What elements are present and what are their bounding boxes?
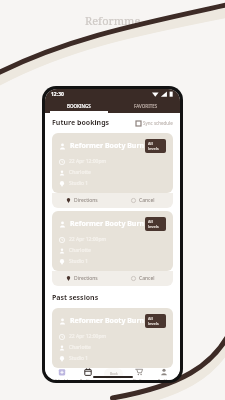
button[interactable]: Directions <box>52 197 112 204</box>
button[interactable]: Studio <box>126 368 151 380</box>
button[interactable]: Directions <box>52 275 112 282</box>
staticText: Reformme <box>85 13 141 28</box>
staticText: Future bookings <box>52 118 110 128</box>
staticText: Schedule <box>55 378 70 380</box>
staticText: Sync schedule <box>143 120 173 126</box>
staticText: Reformer Booty Burn <box>70 219 145 229</box>
button[interactable]: Cancel <box>112 275 173 282</box>
button[interactable]: Book a class <box>104 368 123 380</box>
staticText: FAVORITES <box>134 103 158 109</box>
staticText: Directions <box>74 275 98 282</box>
staticText: Charlotte <box>69 247 91 254</box>
button[interactable]: Reformer Booty Burn <box>52 308 173 368</box>
staticText: Book <box>110 372 118 376</box>
button[interactable]: Cancel <box>112 197 173 204</box>
button[interactable]: Bookings <box>75 368 101 380</box>
button[interactable]: Profile <box>151 368 176 380</box>
staticText: Cancel <box>139 275 155 282</box>
staticText: Reformer Booty Burn <box>70 141 145 151</box>
staticText: 22 Apr 12:00pm <box>69 333 107 340</box>
staticText: BOOKINGS <box>67 103 91 109</box>
staticText: Past sessions <box>52 293 99 303</box>
staticText: Studio 1 <box>69 355 89 362</box>
button[interactable]: FAVORITES <box>112 99 180 113</box>
staticText: All levels <box>148 141 163 151</box>
button[interactable]: BOOKINGS <box>45 99 112 113</box>
button[interactable]: Schedule <box>49 368 75 380</box>
staticText: Studio 1 <box>69 180 89 187</box>
other: Sync schedule <box>136 121 141 126</box>
staticText: 22 Apr 12:00pm <box>69 158 107 165</box>
staticText: Directions <box>74 197 98 204</box>
staticText: Studio <box>133 378 144 380</box>
staticText: Reformer Booty Burn <box>70 316 145 326</box>
staticText: All levels <box>148 219 163 229</box>
staticText: 12:30 <box>51 91 64 98</box>
staticText: Charlotte <box>69 169 91 176</box>
button[interactable]: Sync schedule <box>136 120 173 126</box>
staticText: Cancel <box>139 197 155 204</box>
button[interactable]: Reformer Booty Burn <box>52 211 173 286</box>
staticText: All levels <box>148 316 163 326</box>
staticText: Studio 1 <box>69 258 89 265</box>
staticText: Bookings <box>80 378 96 380</box>
staticText: Profile <box>158 378 169 380</box>
button[interactable]: Reformer Booty Burn <box>52 133 173 208</box>
staticText: Charlotte <box>69 344 91 351</box>
staticText: 22 Apr 12:00pm <box>69 236 107 243</box>
